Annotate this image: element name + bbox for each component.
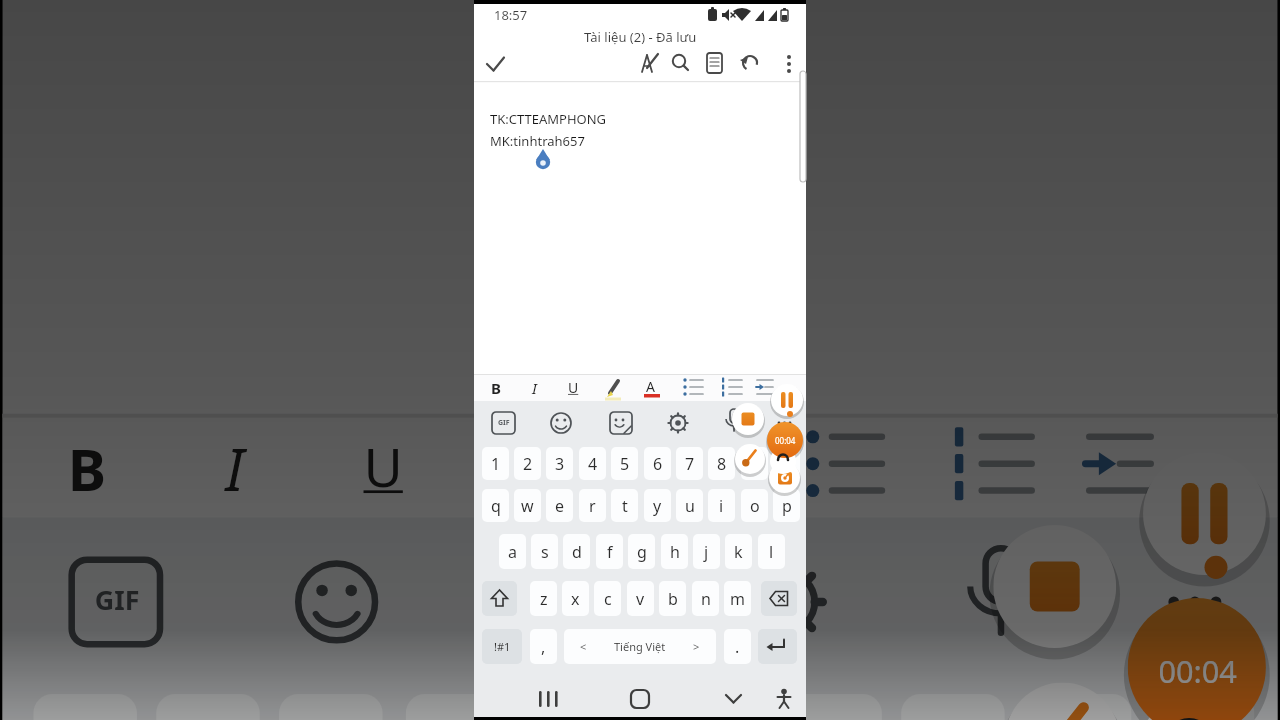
button[interactable] [720, 406, 752, 440]
button[interactable] [522, 374, 550, 401]
button[interactable] [484, 374, 512, 401]
button[interactable] [993, 525, 1116, 648]
button[interactable]: Tiếng Việt [564, 629, 716, 664]
button[interactable] [271, 537, 394, 667]
button[interactable] [625, 414, 732, 517]
button[interactable]: !#1 [482, 629, 522, 664]
button[interactable] [947, 537, 1070, 667]
button[interactable]: d [563, 534, 590, 569]
button[interactable] [187, 414, 294, 517]
button[interactable] [544, 406, 576, 440]
button[interactable] [529, 684, 569, 714]
button[interactable]: a [499, 534, 526, 569]
button[interactable]: f [596, 534, 623, 569]
button[interactable] [479, 414, 586, 517]
button[interactable]: r [579, 489, 606, 522]
button[interactable]: 2 [156, 694, 260, 720]
button[interactable] [636, 374, 664, 401]
button[interactable]: 3 [279, 694, 383, 720]
button[interactable] [480, 50, 510, 80]
button[interactable]: 7 [676, 447, 703, 480]
button[interactable]: y [644, 489, 671, 522]
button[interactable] [774, 50, 804, 80]
button[interactable]: 4 [406, 694, 509, 720]
button[interactable]: k [725, 534, 752, 569]
button[interactable]: 0 [773, 447, 800, 480]
button[interactable]: h [661, 534, 688, 569]
staticText: U [363, 429, 406, 502]
button[interactable] [604, 406, 636, 440]
button[interactable] [714, 684, 754, 714]
button[interactable]: z [530, 581, 557, 616]
button[interactable]: 00:04 [767, 422, 803, 458]
button[interactable] [778, 414, 886, 517]
button[interactable] [769, 684, 803, 714]
button[interactable] [734, 50, 764, 80]
button[interactable]: l [758, 534, 785, 569]
button[interactable]: 6 [655, 694, 759, 720]
button[interactable] [758, 629, 797, 664]
button[interactable] [752, 374, 780, 401]
staticText: i [719, 495, 724, 517]
button[interactable] [666, 50, 696, 80]
button[interactable] [769, 462, 800, 493]
button[interactable]: 2 [514, 447, 541, 480]
button[interactable]: u [676, 489, 703, 522]
button[interactable] [771, 384, 803, 416]
button[interactable]: i [708, 489, 735, 522]
button[interactable]: 9 [741, 447, 768, 480]
button[interactable]: 5 [611, 447, 638, 480]
button[interactable]: 4 [579, 447, 606, 480]
button[interactable]: 7 [778, 694, 882, 720]
button[interactable] [502, 537, 625, 667]
button[interactable] [732, 403, 764, 435]
button[interactable] [662, 406, 694, 440]
button[interactable] [714, 374, 742, 401]
button[interactable] [620, 684, 660, 714]
button[interactable] [700, 50, 730, 80]
button[interactable] [676, 374, 704, 401]
button[interactable] [482, 581, 517, 616]
button[interactable]: g [628, 534, 655, 569]
button[interactable] [924, 414, 1032, 517]
button[interactable] [41, 414, 148, 517]
button[interactable]: 00:04 [1128, 598, 1266, 720]
button[interactable]: p [773, 489, 800, 522]
button[interactable] [1005, 683, 1120, 720]
button[interactable]: v [627, 581, 654, 616]
button[interactable]: w [514, 489, 541, 522]
button[interactable]: s [531, 534, 558, 569]
button[interactable]: q [482, 489, 509, 522]
button[interactable]: n [692, 581, 719, 616]
button[interactable]: o [741, 489, 768, 522]
button[interactable] [761, 581, 797, 616]
button[interactable] [634, 50, 664, 80]
button[interactable]: e [546, 489, 573, 522]
button[interactable] [1070, 414, 1178, 517]
button[interactable]: 8 [901, 694, 1005, 720]
button[interactable] [735, 444, 765, 474]
button[interactable]: 5 [529, 694, 632, 720]
button[interactable]: t [611, 489, 638, 522]
button[interactable] [333, 414, 440, 517]
button[interactable]: c [594, 581, 621, 616]
button[interactable]: b [659, 581, 686, 616]
button[interactable]: x [562, 581, 589, 616]
button[interactable]: , [530, 629, 557, 664]
button[interactable]: 1 [482, 447, 509, 480]
button[interactable]: . [724, 629, 751, 664]
button[interactable] [724, 537, 847, 667]
button[interactable]: 3 [546, 447, 573, 480]
button[interactable]: 0 [1151, 694, 1254, 720]
button[interactable] [56, 537, 179, 667]
button[interactable] [560, 374, 588, 401]
button[interactable]: 1 [33, 694, 137, 720]
button[interactable] [1143, 452, 1266, 575]
button[interactable]: 9 [1028, 694, 1131, 720]
button[interactable] [598, 374, 626, 401]
button[interactable]: m [724, 581, 751, 616]
button[interactable]: 6 [644, 447, 671, 480]
button[interactable]: j [693, 534, 720, 569]
button[interactable]: 8 [708, 447, 735, 480]
button[interactable] [488, 406, 520, 440]
